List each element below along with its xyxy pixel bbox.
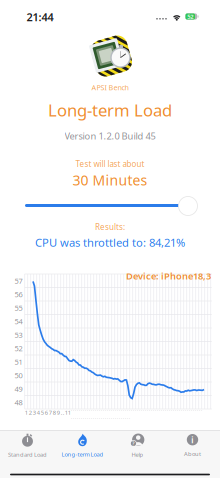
staticText: 1 2 3 4 5 6 7 8 9 ..11: [25, 409, 71, 416]
staticText: 30 Minutes: [72, 170, 147, 190]
button[interactable]: i: [165, 430, 220, 478]
staticText: 54: [14, 316, 22, 326]
staticText: Help: [131, 451, 143, 458]
staticText: ?: [132, 440, 135, 447]
staticText: 53: [14, 330, 22, 340]
staticText: 21:44: [26, 10, 53, 24]
staticText: 56: [14, 289, 22, 299]
staticText: Device: iPhone18,3: [126, 270, 211, 282]
staticText: Results:: [95, 222, 125, 232]
staticText: i: [191, 433, 194, 446]
staticText: About: [184, 450, 201, 458]
button[interactable]: Standard Load: [0, 430, 55, 478]
staticText: 57: [14, 276, 22, 286]
staticText: Long-term Load: [48, 99, 172, 121]
staticText: 48: [14, 397, 22, 407]
staticText: 50: [14, 370, 22, 380]
staticText: Version 1.2.0 Build 45: [64, 130, 155, 142]
staticText: Test will last about: [75, 159, 144, 169]
staticText: 52: [187, 12, 193, 20]
staticText: 52: [14, 343, 22, 353]
staticText: Long-term Load: [61, 450, 103, 458]
button[interactable]: Long-term Load: [55, 430, 110, 478]
staticText: 51: [14, 357, 22, 367]
staticText: CPU was throttled to: 84,21%: [35, 235, 185, 250]
staticText: Standard Load: [8, 451, 47, 458]
staticText: APSI Bench: [91, 83, 128, 92]
staticText: 49: [14, 384, 22, 394]
button[interactable]: ?: [110, 430, 165, 478]
staticText: 55: [14, 303, 22, 313]
staticText: ........................................…: [71, 405, 203, 420]
